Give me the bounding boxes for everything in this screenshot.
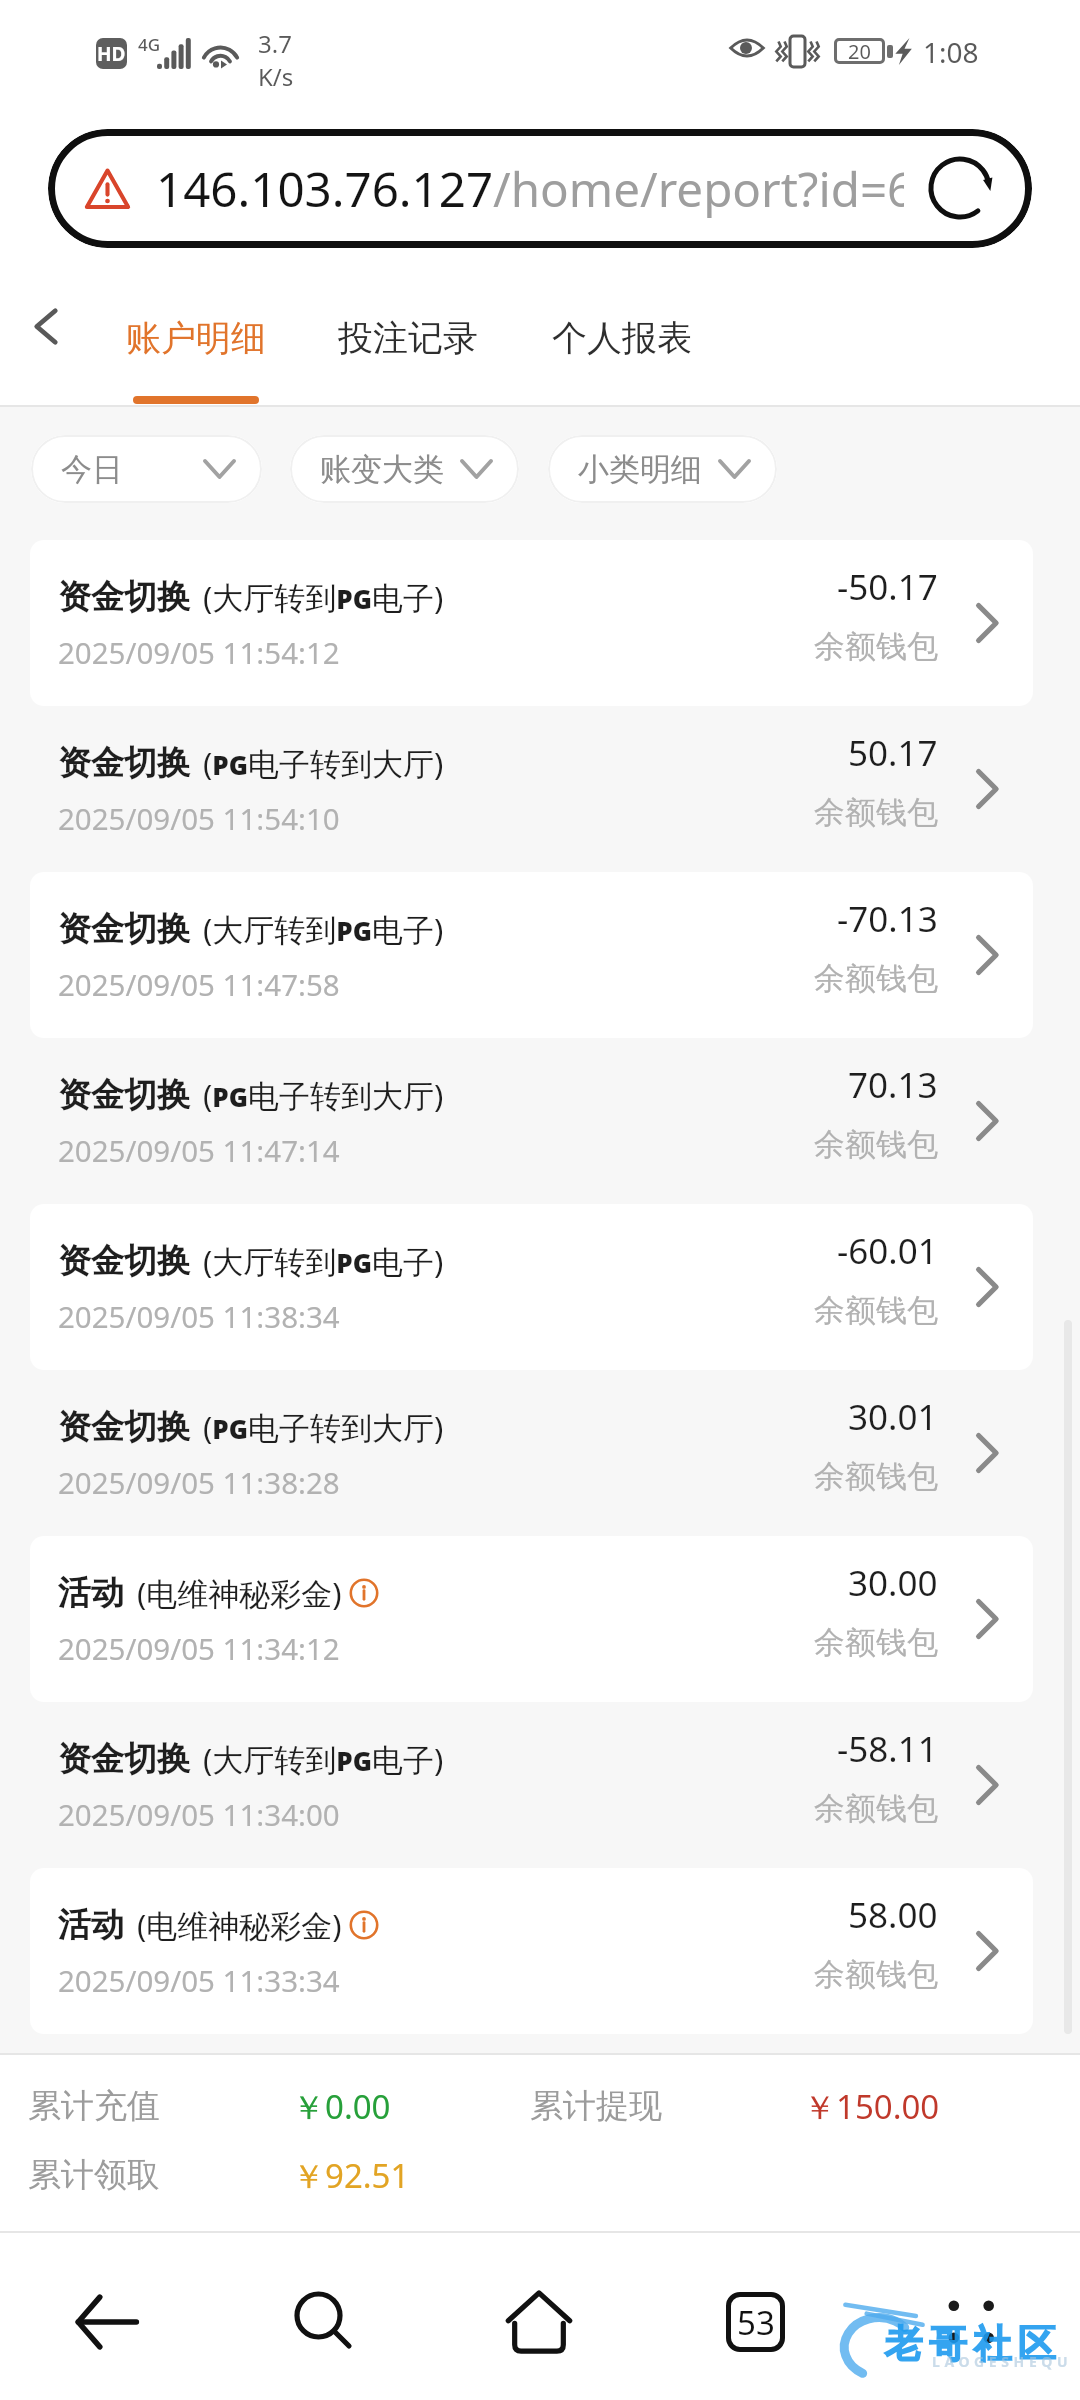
staticText: 余额钱包 bbox=[814, 1457, 938, 1496]
staticText: -60.01 bbox=[837, 1227, 938, 1275]
staticText: 资金切换 bbox=[58, 576, 190, 618]
staticText: 余额钱包 bbox=[814, 1955, 938, 1994]
staticText: 资金切换 bbox=[58, 742, 190, 784]
staticText: -58.11 bbox=[837, 1725, 938, 1773]
staticText: 个人报表 bbox=[552, 316, 692, 360]
staticText: (电维神秘彩金) bbox=[137, 1904, 342, 1946]
button[interactable]: 资金切换 bbox=[30, 1038, 1033, 1204]
button[interactable]: 146.103.76.127/home/report?id=66 bbox=[48, 129, 1032, 248]
staticText: 2025/09/05 11:34:12 bbox=[58, 1628, 340, 1668]
button[interactable]: Reload bbox=[925, 153, 995, 223]
staticText: 余额钱包 bbox=[814, 793, 938, 832]
button[interactable]: Tabs bbox=[695, 2247, 815, 2397]
staticText: (大厅转到PG电子) bbox=[203, 1240, 444, 1282]
button[interactable]: 账户明细 bbox=[106, 250, 286, 405]
button[interactable]: 资金切换 bbox=[30, 1370, 1033, 1536]
staticText: 146.103.76.127/home/report?id=66 bbox=[156, 156, 904, 221]
staticText: 累计提现 bbox=[530, 2085, 662, 2127]
button[interactable]: 投注记录 bbox=[318, 250, 498, 405]
staticText: 58.00 bbox=[848, 1891, 938, 1939]
button[interactable]: 账变大类 bbox=[290, 435, 519, 503]
staticText: 50.17 bbox=[848, 729, 938, 777]
staticText: 2025/09/05 11:47:58 bbox=[58, 964, 340, 1004]
staticText: 投注记录 bbox=[338, 316, 478, 360]
staticText: 余额钱包 bbox=[814, 1125, 938, 1164]
staticText: -50.17 bbox=[837, 563, 938, 611]
button[interactable]: 资金切换 bbox=[30, 540, 1033, 706]
staticText: 资金切换 bbox=[58, 1738, 190, 1780]
staticText: 资金切换 bbox=[58, 1240, 190, 1282]
staticText: 30.00 bbox=[848, 1559, 938, 1607]
staticText: (PG电子转到大厅) bbox=[203, 742, 444, 784]
staticText: 2025/09/05 11:54:12 bbox=[58, 632, 340, 672]
staticText: (PG电子转到大厅) bbox=[203, 1406, 444, 1448]
staticText: 2025/09/05 11:54:10 bbox=[58, 798, 340, 838]
staticText: 余额钱包 bbox=[814, 959, 938, 998]
staticText: HD bbox=[97, 41, 126, 67]
staticText: (大厅转到PG电子) bbox=[203, 908, 444, 950]
button[interactable]: 今日 bbox=[31, 435, 262, 503]
button[interactable]: 资金切换 bbox=[30, 872, 1033, 1038]
button[interactable]: Search bbox=[263, 2247, 383, 2397]
staticText: 2025/09/05 11:38:28 bbox=[58, 1462, 340, 1502]
staticText: 活动 bbox=[58, 1904, 124, 1946]
staticText: 70.13 bbox=[848, 1061, 938, 1109]
staticText: 20 bbox=[848, 38, 871, 64]
staticText: 累计领取 bbox=[28, 2154, 160, 2196]
staticText: 余额钱包 bbox=[814, 627, 938, 666]
staticText: 余额钱包 bbox=[814, 1623, 938, 1662]
staticText: 资金切换 bbox=[58, 1074, 190, 1116]
button[interactable]: Back bbox=[47, 2247, 167, 2397]
staticText: 余额钱包 bbox=[814, 1291, 938, 1330]
staticText: 2025/09/05 11:38:34 bbox=[58, 1296, 340, 1336]
button[interactable]: 活动 bbox=[30, 1536, 1033, 1702]
button[interactable]: 资金切换 bbox=[30, 706, 1033, 872]
staticText: (大厅转到PG电子) bbox=[203, 576, 444, 618]
staticText: 老哥社区 bbox=[881, 2320, 1059, 2368]
button[interactable]: Home bbox=[479, 2247, 599, 2397]
staticText: 累计充值 bbox=[28, 2085, 160, 2127]
staticText: 活动 bbox=[58, 1572, 124, 1614]
staticText: (PG电子转到大厅) bbox=[203, 1074, 444, 1116]
staticText: 1:08 bbox=[923, 33, 979, 71]
staticText: 2025/09/05 11:33:34 bbox=[58, 1960, 340, 2000]
staticText: 2025/09/05 11:34:00 bbox=[58, 1794, 340, 1834]
staticText: ￥150.00 bbox=[803, 2084, 940, 2129]
staticText: K/s bbox=[258, 60, 294, 93]
button[interactable]: 小类明细 bbox=[548, 435, 777, 503]
staticText: 资金切换 bbox=[58, 1406, 190, 1448]
staticText: 账户明细 bbox=[126, 316, 266, 360]
staticText: 3.7 bbox=[258, 27, 292, 60]
button[interactable]: 资金切换 bbox=[30, 1204, 1033, 1370]
staticText: (大厅转到PG电子) bbox=[203, 1738, 444, 1780]
staticText: 资金切换 bbox=[58, 908, 190, 950]
button[interactable]: 活动 bbox=[30, 1868, 1033, 2034]
staticText: -70.13 bbox=[837, 895, 938, 943]
staticText: 2025/09/05 11:47:14 bbox=[58, 1130, 340, 1170]
staticText: ￥0.00 bbox=[292, 2084, 391, 2129]
staticText: 30.01 bbox=[848, 1393, 938, 1441]
staticText: LAOGESHEQU bbox=[932, 2352, 1073, 2371]
staticText: 余额钱包 bbox=[814, 1789, 938, 1828]
staticText: 4G bbox=[138, 33, 161, 56]
staticText: 今日 bbox=[61, 450, 123, 489]
staticText: ￥92.51 bbox=[292, 2153, 410, 2198]
button[interactable]: Back bbox=[0, 286, 92, 366]
staticText: 账变大类 bbox=[320, 450, 444, 489]
button[interactable]: 个人报表 bbox=[532, 250, 712, 405]
button[interactable]: Menu bbox=[911, 2247, 1031, 2397]
button[interactable]: 资金切换 bbox=[30, 1702, 1033, 1868]
staticText: (电维神秘彩金) bbox=[137, 1572, 342, 1614]
staticText: 小类明细 bbox=[578, 450, 702, 489]
staticText: 53 bbox=[737, 2300, 775, 2345]
